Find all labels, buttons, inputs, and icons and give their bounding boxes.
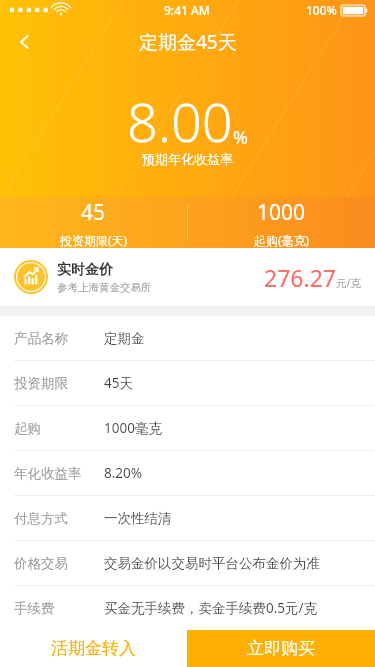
button[interactable]: 年化收益率 (0, 451, 375, 495)
staticText: 100% (306, 2, 337, 18)
staticText: 参考上海黄金交易所 (57, 281, 152, 294)
staticText: 45天 (104, 374, 133, 392)
other: Gold price (14, 260, 48, 294)
staticText: 交易金价以交易时平台公布金价为准 (104, 555, 320, 572)
staticText: 立即购买 (247, 638, 315, 659)
staticText: 定期金45天 (139, 29, 237, 55)
staticText: 一次性结清 (104, 510, 172, 527)
staticText: 预期年化收益率 (142, 151, 233, 167)
staticText: 买金无手续费，卖金手续费0.5元/克 (104, 599, 318, 617)
staticText: 年化收益率 (14, 465, 104, 482)
staticText: 8.00 (127, 84, 233, 158)
staticText: 起购(毫克) (254, 232, 310, 248)
button[interactable]: 立即购买 (187, 630, 375, 667)
staticText: 投资期限(天) (60, 232, 128, 248)
staticText: 元/克 (336, 276, 361, 290)
staticText: 手续费 (14, 600, 104, 617)
staticText: 45 (81, 198, 106, 227)
staticText: 投资期限 (14, 375, 104, 392)
staticText: 8.20% (104, 464, 143, 482)
staticText: 1000 (257, 198, 306, 227)
staticText: 定期金 (104, 330, 145, 347)
staticText: 活期金转入 (51, 638, 136, 659)
staticText: 产品名称 (14, 330, 104, 347)
button[interactable]: 价格交易 (0, 541, 375, 585)
button[interactable]: 手续费 (0, 586, 375, 630)
staticText: % (233, 125, 248, 150)
staticText: 付息方式 (14, 510, 104, 527)
staticText: 1000毫克 (104, 419, 162, 437)
staticText: 价格交易 (14, 555, 104, 572)
button[interactable]: 付息方式 (0, 496, 375, 540)
button[interactable]: Gold price (0, 248, 375, 306)
staticText: 实时金价 (57, 261, 113, 279)
button[interactable]: 起购 (0, 406, 375, 450)
staticText: 9:41 AM (164, 2, 210, 18)
staticText: 276.27 (264, 262, 336, 293)
button[interactable]: Back (3, 20, 47, 64)
button[interactable]: 投资期限 (0, 361, 375, 405)
staticText: 起购 (14, 420, 104, 437)
button[interactable]: 活期金转入 (0, 630, 187, 667)
button[interactable]: 产品名称 (0, 316, 375, 360)
